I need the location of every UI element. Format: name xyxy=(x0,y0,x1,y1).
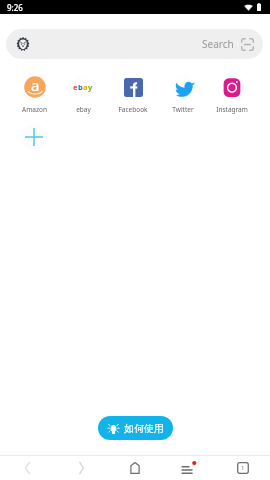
button[interactable]: Brave Shields xyxy=(6,29,263,59)
button[interactable]: Instagram xyxy=(207,72,257,114)
staticText: e xyxy=(73,82,78,92)
button[interactable]: Back xyxy=(0,456,54,480)
staticText: b xyxy=(78,82,83,92)
staticText: Twitter xyxy=(172,105,194,114)
button[interactable]: Forward xyxy=(54,456,108,480)
staticText: Search xyxy=(202,37,234,51)
button[interactable]: Menu xyxy=(162,456,216,480)
staticText: Instagram xyxy=(216,105,248,114)
other: Scan QR code xyxy=(241,38,254,51)
button[interactable]: e xyxy=(58,72,108,114)
button[interactable]: Add shortcut xyxy=(9,121,59,152)
button[interactable]: a xyxy=(9,72,59,114)
staticText: Facebook xyxy=(118,105,148,114)
staticText: y xyxy=(88,82,93,92)
button[interactable]: Home xyxy=(108,456,162,480)
staticText: a xyxy=(83,82,88,92)
button[interactable]: Twitter xyxy=(158,72,208,114)
button[interactable]: Facebook xyxy=(108,72,158,114)
staticText: 9:26 xyxy=(7,2,23,13)
button[interactable]: 如何使用 xyxy=(98,416,173,440)
staticText: 1 xyxy=(241,464,245,472)
staticText: ebay xyxy=(76,105,91,114)
staticText: a xyxy=(31,75,40,95)
other: Brave Shields xyxy=(16,37,30,51)
button[interactable]: Tabs xyxy=(216,456,270,480)
staticText: 如何使用 xyxy=(124,422,164,435)
staticText: Amazon xyxy=(22,105,47,114)
